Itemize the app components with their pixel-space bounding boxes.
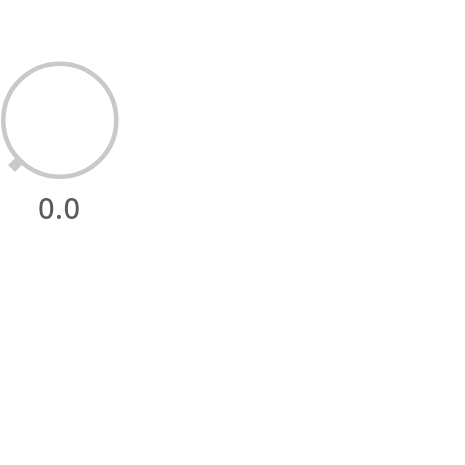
button[interactable]: Rating dial, 0.0 bbox=[0, 50, 130, 191]
staticText: 0.0 bbox=[38, 188, 81, 227]
